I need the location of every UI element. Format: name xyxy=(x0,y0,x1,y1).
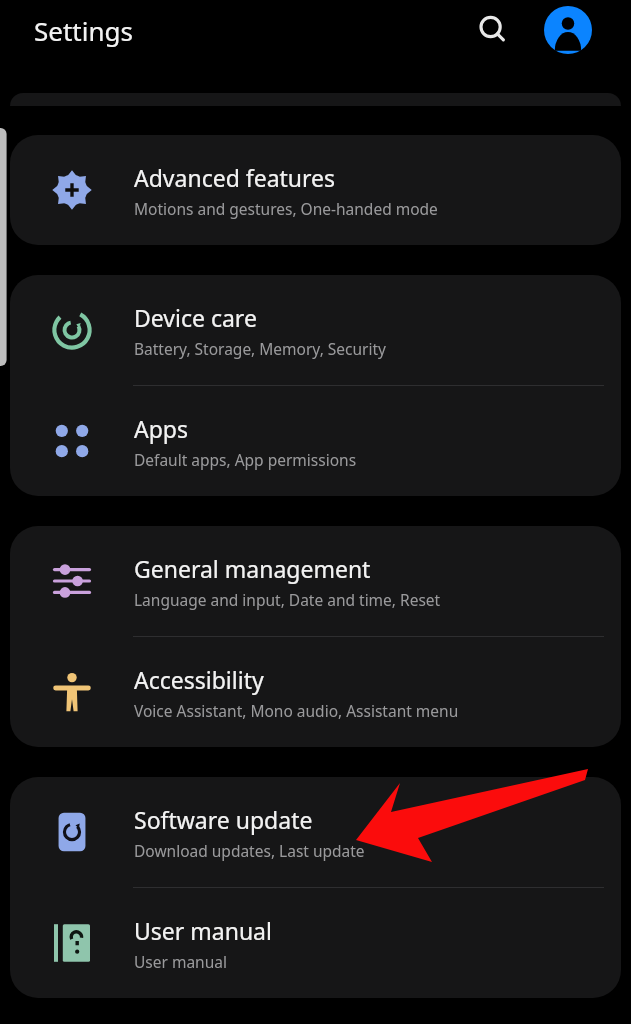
button[interactable]: Accessibility xyxy=(10,637,621,747)
button[interactable]: Account xyxy=(543,5,593,55)
staticText: Download updates, Last update xyxy=(134,840,365,861)
staticText: Software update xyxy=(134,804,313,835)
staticText: Advanced features xyxy=(134,162,336,193)
button[interactable]: Device care xyxy=(10,275,621,385)
button[interactable]: Search xyxy=(470,7,516,53)
staticText: Default apps, App permissions xyxy=(134,449,357,470)
staticText: Accessibility xyxy=(134,664,264,695)
button[interactable]: General management xyxy=(10,526,621,636)
staticText: General management xyxy=(134,553,371,584)
button[interactable]: Software update xyxy=(10,777,621,887)
staticText: Settings xyxy=(34,13,133,48)
staticText: Motions and gestures, One-handed mode xyxy=(134,198,438,219)
button[interactable]: Settings xyxy=(34,13,133,48)
staticText: Language and input, Date and time, Reset xyxy=(134,589,441,610)
staticText: Battery, Storage, Memory, Security xyxy=(134,338,387,359)
button[interactable]: Apps xyxy=(10,386,621,496)
staticText: Voice Assistant, Mono audio, Assistant m… xyxy=(134,700,459,721)
staticText: Apps xyxy=(134,413,189,444)
staticText: User manual xyxy=(134,951,227,972)
button[interactable]: User manual xyxy=(10,888,621,998)
staticText: User manual xyxy=(134,915,272,946)
button[interactable]: Advanced features xyxy=(10,135,621,245)
staticText: Device care xyxy=(134,302,257,333)
